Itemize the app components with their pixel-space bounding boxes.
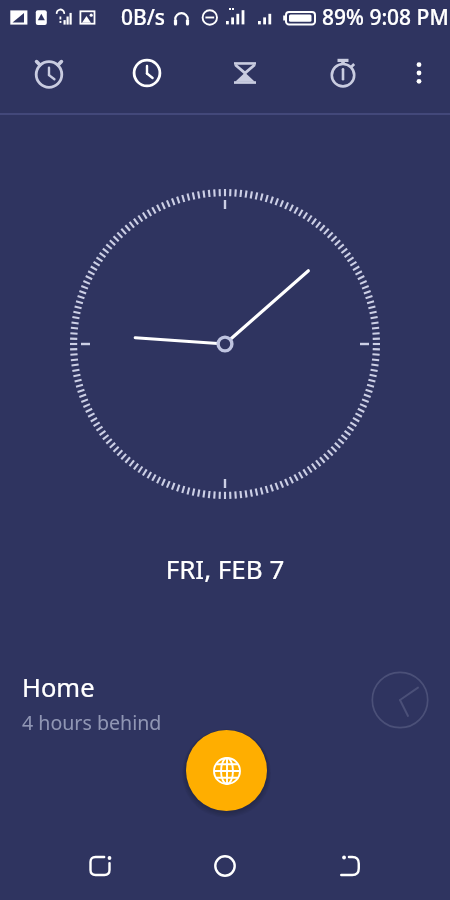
button[interactable]: More options: [394, 32, 444, 114]
button[interactable]: Back: [300, 832, 400, 900]
staticText: 4 hours behind: [22, 709, 162, 736]
staticText: FRI, FEB 7: [0, 551, 450, 586]
button[interactable]: Recents: [50, 832, 150, 900]
button[interactable]: Home: [0, 660, 450, 740]
staticText: Home: [22, 670, 95, 705]
button[interactable]: Timer: [196, 32, 294, 114]
button[interactable]: Add city: [186, 730, 267, 811]
staticText: 0B/s: [121, 3, 166, 32]
button[interactable]: Alarm: [0, 32, 98, 114]
staticText: 89% 9:08 PM: [322, 3, 449, 32]
button[interactable]: Home: [175, 832, 275, 900]
button[interactable]: Stopwatch: [294, 32, 392, 114]
button[interactable]: Clock: [98, 32, 196, 114]
